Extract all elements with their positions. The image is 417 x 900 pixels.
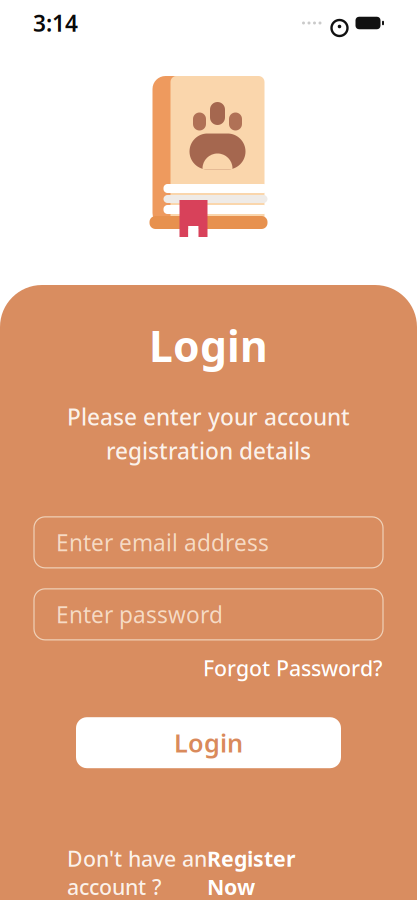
button[interactable]: Enter password <box>34 589 383 640</box>
button[interactable]: Don't have an account ? <box>67 844 350 900</box>
button[interactable]: Enter email address <box>34 517 383 568</box>
staticText: Login <box>149 317 268 374</box>
staticText: Register Now <box>207 844 296 900</box>
staticText: 3:14 <box>33 8 78 38</box>
staticText: Enter password <box>56 599 223 629</box>
staticText: registration details <box>106 436 311 466</box>
staticText: Forgot Password? <box>203 654 383 682</box>
button[interactable]: Forgot Password? <box>34 654 383 682</box>
staticText: Please enter your account <box>67 402 350 432</box>
staticText: Don't have an account ? <box>67 844 207 900</box>
staticText: Login <box>174 726 243 759</box>
button[interactable]: Login <box>76 717 341 768</box>
staticText: Enter email address <box>56 527 269 557</box>
